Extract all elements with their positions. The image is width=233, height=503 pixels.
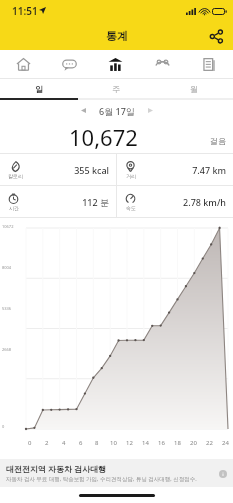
staticText: 11:51 <box>12 4 38 18</box>
button[interactable]: 거리 <box>117 154 233 185</box>
staticText: 칼로리 <box>8 173 23 179</box>
staticText: 10 <box>110 439 117 447</box>
staticText: 16 <box>158 439 165 447</box>
staticText: 6월 17일 <box>99 105 135 117</box>
button[interactable]: 일 <box>0 79 77 98</box>
staticText: 월 <box>190 84 198 94</box>
button[interactable]: 월 <box>155 79 233 98</box>
staticText: 18 <box>174 439 181 447</box>
button[interactable]: 주 <box>77 79 155 98</box>
staticText: 8 <box>95 439 99 447</box>
button[interactable]: 시간 <box>0 186 116 217</box>
staticText: 7.47 km <box>136 164 226 176</box>
staticText: 속도 <box>126 205 136 211</box>
staticText: 2668 <box>2 347 12 352</box>
staticText: 14 <box>142 439 149 447</box>
staticText: 5336 <box>2 306 12 311</box>
staticText: 22 <box>206 439 213 447</box>
staticText: 걸음 <box>210 136 226 146</box>
button[interactable]: 칼로리 <box>0 154 116 185</box>
button[interactable]: Friends <box>139 50 186 78</box>
staticText: 대전전지역 자동차 검사대행 <box>6 463 107 474</box>
staticText: 0 <box>2 424 5 429</box>
staticText: 0 <box>28 439 32 447</box>
button[interactable]: Previous day <box>75 102 92 119</box>
staticText: 시간 <box>9 205 19 211</box>
staticText: 주 <box>112 84 120 94</box>
button[interactable]: More <box>186 50 233 78</box>
button[interactable]: Ad information <box>216 467 229 480</box>
staticText: 24 <box>222 439 229 447</box>
button[interactable]: Statistics <box>92 50 139 78</box>
staticText: 거리 <box>126 173 136 179</box>
button[interactable]: Chat <box>46 50 92 78</box>
staticText: 4 <box>62 439 66 447</box>
staticText: 8004 <box>2 265 12 270</box>
staticText: 2.78 km/h <box>136 196 226 208</box>
button[interactable]: Next day <box>142 102 159 119</box>
button[interactable]: 속도 <box>117 186 233 217</box>
staticText: 6 <box>79 439 83 447</box>
button[interactable]: Share <box>204 24 228 48</box>
staticText: 2 <box>45 439 49 447</box>
staticText: 112 분 <box>19 196 109 208</box>
staticText: 일 <box>35 84 43 94</box>
staticText: 12 <box>126 439 133 447</box>
staticText: 10,672 <box>69 122 138 152</box>
staticText: 20 <box>190 439 197 447</box>
staticText: 355 kcal <box>23 164 109 176</box>
staticText: 통계 <box>106 29 128 43</box>
staticText: 10672 <box>2 224 14 229</box>
button[interactable]: Home <box>0 50 46 78</box>
staticText: 자동차 검사 무료 대행, 탁송보험 가입, 수리견적상담, 튜닝 검사대행, … <box>6 475 197 483</box>
